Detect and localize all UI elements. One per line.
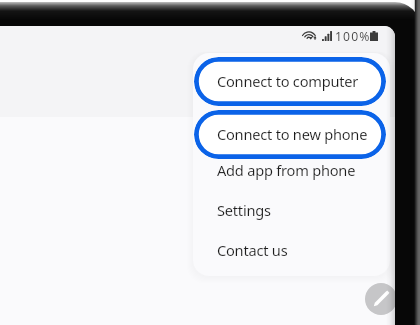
staticText: 100% <box>335 28 371 45</box>
staticText: Add app from phone <box>217 160 356 180</box>
staticText: Contact us <box>217 240 288 260</box>
staticText: Connect to computer <box>217 71 359 91</box>
button[interactable]: Add app from phone <box>193 150 390 190</box>
staticText: Settings <box>217 200 271 220</box>
button[interactable]: Connect to computer <box>194 57 386 106</box>
button[interactable]: Settings <box>193 190 390 230</box>
staticText: Connect to new phone <box>217 124 368 144</box>
button[interactable]: Connect to new phone <box>194 110 386 159</box>
button[interactable]: Compose <box>365 283 395 315</box>
button[interactable]: Contact us <box>193 230 390 270</box>
